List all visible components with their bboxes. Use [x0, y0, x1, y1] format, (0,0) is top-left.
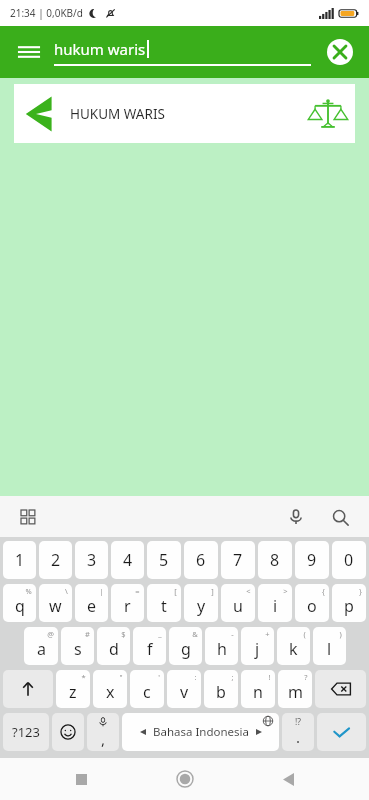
- button[interactable]: &: [169, 627, 202, 665]
- staticText: ,: [101, 729, 106, 749]
- button[interactable]: }: [332, 584, 366, 622]
- button[interactable]: hukum waris: [54, 39, 311, 66]
- staticText: 4: [123, 549, 133, 571]
- staticText: t: [161, 595, 167, 617]
- staticText: [: [174, 586, 177, 596]
- button[interactable]: <: [221, 584, 255, 622]
- staticText: 3: [87, 549, 97, 571]
- staticText: Bahasa Indonesia: [153, 724, 249, 740]
- button[interactable]: $: [97, 627, 130, 665]
- staticText: !?: [295, 716, 301, 728]
- button[interactable]: :: [167, 670, 201, 708]
- button[interactable]: Search: [325, 502, 355, 532]
- button[interactable]: =: [111, 584, 144, 622]
- staticText: e: [87, 595, 97, 617]
- staticText: x: [106, 681, 115, 703]
- button[interactable]: Shift: [3, 670, 53, 708]
- staticText: +: [265, 629, 270, 639]
- button[interactable]: 1: [3, 541, 36, 579]
- button[interactable]: 4: [111, 541, 144, 579]
- staticText: n: [253, 681, 263, 703]
- staticText: ": [119, 672, 123, 682]
- button[interactable]: Bahasa Indonesia: [122, 713, 279, 751]
- staticText: ': [158, 672, 160, 682]
- staticText: q: [15, 595, 25, 617]
- button[interactable]: 0: [332, 541, 366, 579]
- staticText: 7: [233, 549, 243, 571]
- button[interactable]: @: [24, 627, 58, 665]
- button[interactable]: ': [130, 670, 164, 708]
- button[interactable]: -: [205, 627, 238, 665]
- staticText: z: [69, 681, 77, 703]
- staticText: 0: [344, 549, 354, 571]
- button[interactable]: Recents: [59, 758, 103, 800]
- staticText: (: [303, 629, 306, 639]
- button[interactable]: 8: [258, 541, 292, 579]
- button[interactable]: ?123: [3, 713, 49, 751]
- button[interactable]: 6: [184, 541, 218, 579]
- button[interactable]: ;: [204, 670, 238, 708]
- staticText: o: [307, 595, 317, 617]
- button[interactable]: Done: [317, 713, 366, 751]
- button[interactable]: [: [147, 584, 181, 622]
- staticText: v: [180, 681, 189, 703]
- button[interactable]: 9: [295, 541, 329, 579]
- button[interactable]: Voice input: [281, 502, 311, 532]
- button[interactable]: ": [93, 670, 127, 708]
- staticText: >: [283, 586, 288, 596]
- staticText: #: [85, 629, 90, 639]
- staticText: hukum waris: [54, 39, 146, 59]
- staticText: a: [37, 638, 46, 660]
- button[interactable]: Clear search: [321, 33, 359, 71]
- staticText: k: [289, 638, 298, 660]
- button[interactable]: Period: [282, 713, 314, 751]
- button[interactable]: _: [133, 627, 166, 665]
- button[interactable]: 5: [147, 541, 181, 579]
- button[interactable]: (: [277, 627, 310, 665]
- staticText: !: [268, 672, 271, 682]
- staticText: @: [47, 629, 54, 639]
- button[interactable]: +: [241, 627, 274, 665]
- button[interactable]: 7: [221, 541, 255, 579]
- staticText: :: [194, 672, 197, 682]
- button[interactable]: ]: [184, 584, 218, 622]
- button[interactable]: Comma, voice input: [87, 713, 119, 751]
- staticText: 21:34 | 0,0KB/d: [10, 6, 83, 20]
- button[interactable]: *: [56, 670, 90, 708]
- staticText: j: [255, 638, 260, 660]
- button[interactable]: HUKUM WARIS: [14, 84, 355, 143]
- button[interactable]: Emoji: [52, 713, 84, 751]
- staticText: <: [246, 586, 251, 596]
- button[interactable]: 3: [75, 541, 108, 579]
- staticText: ?123: [12, 723, 40, 741]
- staticText: y: [197, 595, 206, 617]
- button[interactable]: |: [75, 584, 108, 622]
- button[interactable]: Backspace: [315, 670, 366, 708]
- button[interactable]: {: [295, 584, 329, 622]
- staticText: {: [322, 586, 325, 596]
- button[interactable]: Back: [266, 758, 310, 800]
- staticText: i: [273, 595, 278, 617]
- button[interactable]: ): [313, 627, 346, 665]
- button[interactable]: #: [61, 627, 94, 665]
- staticText: HUKUM WARIS: [70, 105, 165, 123]
- staticText: *: [81, 672, 86, 682]
- staticText: u: [233, 595, 243, 617]
- staticText: 9: [307, 549, 317, 571]
- button[interactable]: Keyboard options: [14, 503, 42, 531]
- staticText: s: [74, 638, 82, 660]
- button[interactable]: ?: [278, 670, 312, 708]
- button[interactable]: Menu: [12, 35, 46, 69]
- button[interactable]: Home: [163, 758, 207, 800]
- staticText: l: [327, 638, 332, 660]
- button[interactable]: \: [39, 584, 72, 622]
- staticText: ?: [304, 672, 308, 682]
- button[interactable]: %: [3, 584, 36, 622]
- button[interactable]: !: [241, 670, 275, 708]
- staticText: ): [339, 629, 342, 639]
- button[interactable]: 2: [39, 541, 72, 579]
- staticText: .: [296, 727, 301, 747]
- staticText: p: [344, 595, 354, 617]
- staticText: d: [109, 638, 119, 660]
- button[interactable]: >: [258, 584, 292, 622]
